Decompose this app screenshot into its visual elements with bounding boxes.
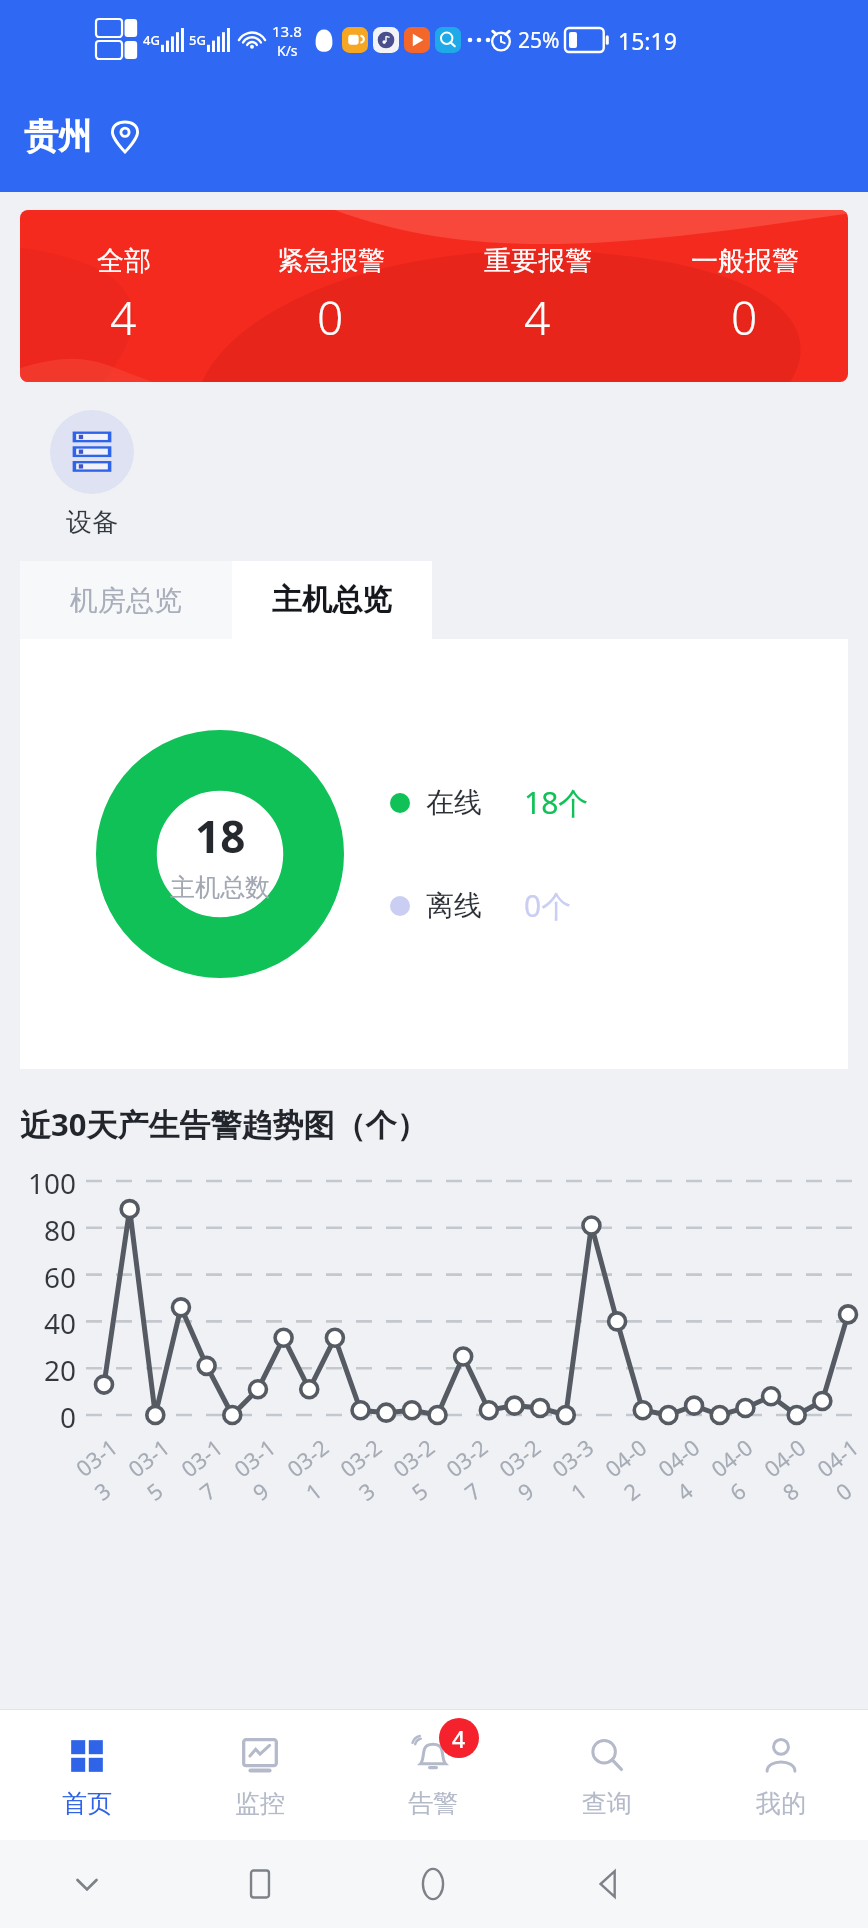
staticText: 全部	[97, 244, 151, 278]
button[interactable]: 重要报警	[434, 210, 641, 382]
staticText: 0	[731, 286, 758, 349]
button[interactable]: 全部	[20, 210, 227, 382]
staticText: 告警	[408, 1788, 458, 1819]
staticText: 重要报警	[484, 244, 592, 278]
button[interactable]: 查询	[520, 1710, 694, 1840]
staticText: 15:19	[618, 25, 677, 56]
staticText: 13.8	[272, 21, 302, 41]
staticText: 03-31	[545, 1427, 624, 1507]
staticText: 离线	[426, 888, 482, 923]
staticText: 03-25	[386, 1427, 465, 1507]
staticText: 03-13	[69, 1427, 147, 1506]
staticText: 在线	[426, 785, 482, 820]
staticText: 4	[110, 286, 137, 349]
button[interactable]: Back	[520, 1840, 694, 1928]
staticText: 4	[524, 286, 551, 349]
button[interactable]: Home	[346, 1840, 520, 1928]
staticText: 03-21	[280, 1427, 359, 1507]
button[interactable]: Hide keyboard	[0, 1840, 173, 1928]
staticText: 4G	[143, 31, 160, 49]
staticText: K/s	[277, 41, 298, 60]
staticText: 近30天产生告警趋势图（个）	[20, 1103, 428, 1145]
staticText: 机房总览	[70, 583, 182, 618]
staticText: 0个	[524, 885, 572, 926]
staticText: 主机总览	[272, 581, 392, 619]
button[interactable]: 首页	[0, 1710, 173, 1840]
button[interactable]: 4	[346, 1710, 520, 1840]
button[interactable]: 在线	[390, 780, 589, 825]
staticText: 4	[452, 1723, 466, 1754]
staticText: 04-10	[810, 1427, 868, 1507]
staticText: 04-08	[757, 1427, 836, 1507]
staticText: 80	[0, 1211, 76, 1249]
button[interactable]: 监控	[173, 1710, 346, 1840]
button[interactable]: 离线	[390, 883, 572, 928]
staticText: 首页	[62, 1788, 112, 1819]
staticText: 100	[0, 1164, 76, 1202]
staticText: 5G	[189, 31, 206, 49]
staticText: 18个	[524, 782, 589, 823]
staticText: 主机总数	[170, 872, 270, 903]
staticText: 18	[195, 806, 246, 866]
staticText: 设备	[66, 506, 118, 539]
button[interactable]: 我的	[694, 1710, 868, 1840]
staticText: 04-04	[651, 1427, 730, 1507]
button[interactable]: 贵州	[20, 107, 146, 166]
staticText: 60	[0, 1258, 76, 1296]
button[interactable]: 紧急报警	[227, 210, 434, 382]
staticText: 监控	[235, 1788, 285, 1819]
staticText: 紧急报警	[277, 244, 385, 278]
button[interactable]: 设备	[36, 406, 148, 543]
staticText: 0	[0, 1398, 76, 1436]
staticText: 一般报警	[691, 244, 799, 278]
staticText: 03-23	[333, 1427, 412, 1507]
button[interactable]: 全部	[20, 210, 848, 382]
staticText: 03-27	[439, 1427, 518, 1507]
staticText: 03-19	[227, 1427, 306, 1507]
staticText: 03-15	[121, 1427, 200, 1507]
staticText: 25%	[518, 26, 560, 55]
staticText: 04-02	[598, 1427, 677, 1507]
staticText: 查询	[582, 1788, 632, 1819]
staticText: 03-29	[492, 1427, 571, 1507]
staticText: 03-17	[174, 1427, 253, 1507]
button[interactable]: 主机总览	[232, 561, 432, 639]
staticText: 0	[317, 286, 344, 349]
staticText: 贵州	[24, 115, 92, 158]
staticText: 我的	[756, 1788, 806, 1819]
staticText: 20	[0, 1351, 76, 1389]
staticText: 40	[0, 1304, 76, 1342]
button[interactable]: 机房总览	[20, 561, 232, 639]
button[interactable]: 一般报警	[641, 210, 848, 382]
button[interactable]: Recent apps	[173, 1840, 346, 1928]
staticText: 04-06	[704, 1427, 783, 1507]
